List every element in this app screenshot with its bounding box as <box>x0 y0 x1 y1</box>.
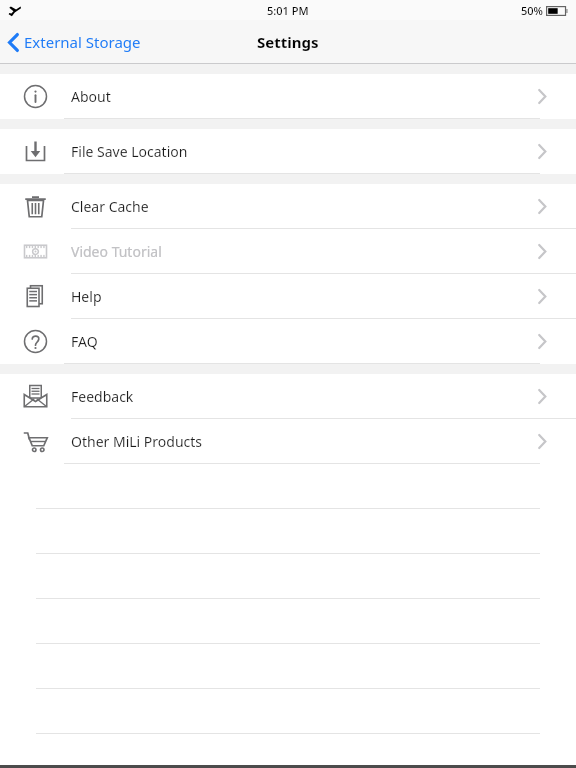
button[interactable]: File Save Location <box>0 129 576 174</box>
staticText: Video Tutorial <box>71 242 162 261</box>
button[interactable]: Feedback <box>0 374 576 419</box>
staticText: External Storage <box>24 32 141 52</box>
other: Clear Cache <box>23 194 48 219</box>
other: Other MiLi Products <box>23 429 48 454</box>
button[interactable]: Help <box>0 274 576 319</box>
other: Help <box>23 284 48 309</box>
other: Video Tutorial <box>23 239 48 264</box>
staticText: File Save Location <box>71 142 188 161</box>
staticText: Feedback <box>71 387 134 406</box>
other: File Save Location <box>23 139 48 164</box>
other: About <box>23 84 48 109</box>
staticText: Help <box>71 287 102 306</box>
staticText: About <box>71 87 111 106</box>
staticText: Other MiLi Products <box>71 432 203 451</box>
staticText: Clear Cache <box>71 197 149 216</box>
staticText: 5:01 PM <box>267 3 309 18</box>
other: Feedback <box>23 384 48 409</box>
button[interactable]: About <box>0 74 576 119</box>
staticText: 50% <box>521 3 543 18</box>
button[interactable]: Other MiLi Products <box>0 419 576 464</box>
button[interactable]: FAQ <box>0 319 576 364</box>
other: FAQ <box>23 329 48 354</box>
button[interactable]: Video Tutorial <box>0 229 576 274</box>
button[interactable]: Clear Cache <box>0 184 576 229</box>
button[interactable]: External Storage <box>0 26 151 58</box>
staticText: FAQ <box>71 332 98 351</box>
staticText: Settings <box>257 32 319 52</box>
